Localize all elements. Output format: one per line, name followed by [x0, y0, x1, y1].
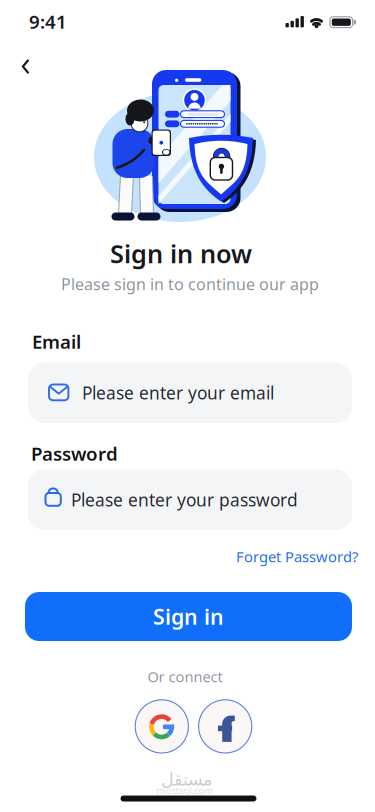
button[interactable]: Forget Password?: [236, 547, 358, 566]
staticText: Please sign in to continue our app: [61, 273, 319, 295]
button[interactable]: [3, 44, 47, 88]
staticText: Password: [31, 441, 118, 466]
staticText: Please enter your password: [71, 488, 298, 511]
button[interactable]: [134, 699, 189, 754]
button[interactable]: [198, 699, 253, 754]
staticText: Forget Password?: [236, 547, 358, 566]
staticText: 9:41: [29, 9, 67, 34]
button[interactable]: Please enter your email: [28, 362, 352, 423]
staticText: Or connect: [147, 667, 222, 686]
staticText: Email: [32, 329, 81, 354]
staticText: Sign in: [153, 602, 224, 631]
staticText: Please enter your email: [82, 381, 274, 404]
button[interactable]: Please enter your password: [28, 469, 352, 530]
button[interactable]: Sign in: [25, 592, 352, 641]
staticText: mostaql.com: [156, 784, 213, 797]
staticText: Sign in now: [110, 237, 252, 270]
staticText: مستقل: [160, 770, 211, 789]
